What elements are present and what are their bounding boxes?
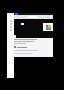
button[interactable]: Nav item 4 xyxy=(7,28,14,31)
button[interactable]: Nav item 2 xyxy=(7,22,14,25)
button[interactable]: App card xyxy=(43,23,53,31)
button[interactable]: Nav item 1 xyxy=(7,19,14,22)
button[interactable]: Nav item 3 xyxy=(7,25,14,28)
